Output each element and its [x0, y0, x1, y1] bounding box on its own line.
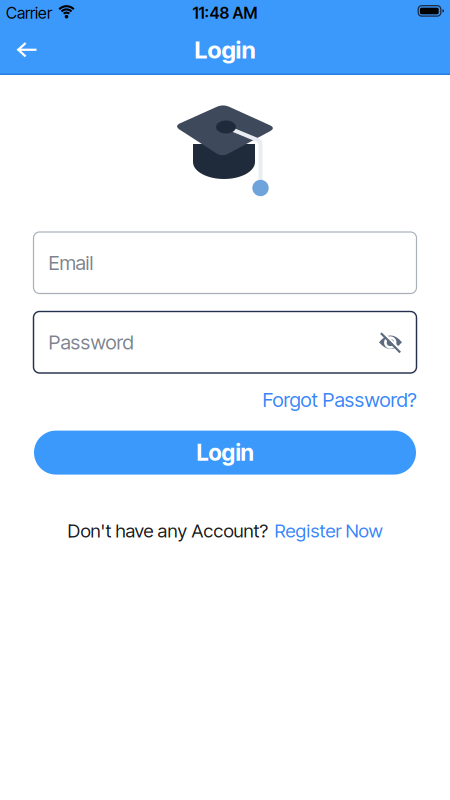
staticText: Register Now — [274, 520, 382, 542]
button[interactable]: Forgot Password? — [262, 388, 416, 412]
staticText: 11:48 AM — [192, 4, 257, 22]
staticText: Don't have any Account? — [67, 520, 268, 542]
button[interactable]: Back — [0, 28, 38, 71]
button[interactable]: Login — [34, 431, 416, 475]
textField[interactable]: Email — [48, 251, 403, 275]
staticText: Email — [48, 251, 93, 275]
secureTextField[interactable]: Password — [48, 330, 377, 354]
staticText: Forgot Password? — [262, 388, 416, 412]
staticText: Login — [196, 439, 253, 466]
staticText: Password — [48, 330, 133, 354]
staticText: Carrier — [6, 4, 52, 22]
button[interactable]: Register Now — [274, 520, 382, 542]
button[interactable]: Show password — [377, 330, 403, 354]
staticText: Login — [194, 36, 255, 64]
